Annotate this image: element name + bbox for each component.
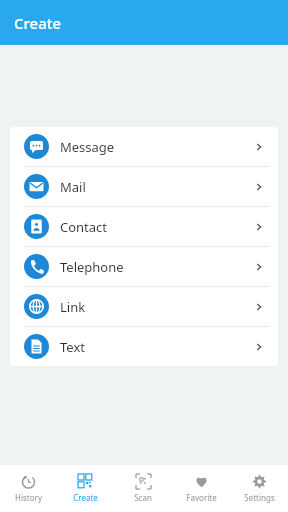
button[interactable]: Contact [10, 207, 278, 247]
staticText: Message [60, 138, 115, 156]
button[interactable]: History [0, 465, 57, 512]
button[interactable]: Text [10, 327, 278, 366]
button[interactable]: Telephone [10, 247, 278, 287]
staticText: Contact [60, 218, 108, 236]
staticText: Telephone [60, 258, 124, 276]
staticText: Settings [244, 492, 275, 503]
staticText: Link [60, 298, 86, 316]
button[interactable]: Favorite [172, 465, 230, 512]
staticText: Create [14, 13, 62, 33]
button[interactable]: Mail [10, 167, 278, 207]
button[interactable]: Message [10, 127, 278, 167]
staticText: History [15, 492, 42, 503]
button[interactable]: Settings [230, 465, 288, 512]
staticText: Mail [60, 178, 86, 196]
staticText: Scan [134, 492, 152, 503]
staticText: Text [60, 338, 85, 356]
staticText: Create [73, 492, 98, 503]
staticText: Favorite [186, 492, 217, 503]
button[interactable]: Create [57, 465, 114, 512]
button[interactable]: Link [10, 287, 278, 327]
button[interactable]: Scan [114, 465, 172, 512]
